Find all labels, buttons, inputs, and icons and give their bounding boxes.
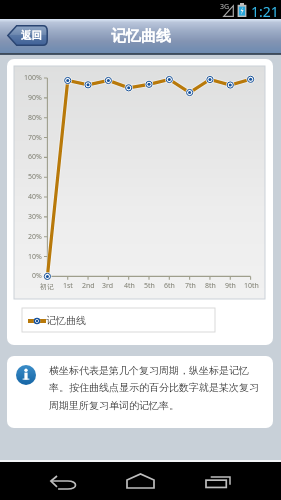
button[interactable]: Recent apps (191, 462, 245, 500)
staticText: 3rd (102, 281, 114, 291)
staticText: 60% (28, 152, 42, 162)
staticText: 2nd (82, 281, 95, 291)
staticText: 9th (225, 281, 236, 291)
staticText: 初记 (40, 282, 54, 291)
staticText: 7th (185, 281, 196, 291)
staticText: 4th (124, 281, 135, 291)
staticText: 1:21 (251, 2, 279, 21)
button[interactable]: Back (36, 462, 90, 500)
staticText: 6th (164, 281, 175, 291)
staticText: 记忆曲线 (46, 314, 86, 327)
staticText: 横坐标代表是第几个复习周期，纵坐标是记忆率。按住曲线点显示的百分比数字就是某次复… (49, 364, 263, 412)
staticText: 100% (24, 73, 42, 83)
staticText: 3G (220, 2, 230, 12)
staticText: 30% (28, 212, 42, 222)
staticText: 0% (32, 271, 42, 281)
button[interactable]: Home (113, 462, 167, 500)
staticText: 20% (28, 232, 42, 242)
staticText: 记忆曲线 (111, 27, 171, 46)
staticText: 8th (205, 281, 216, 291)
staticText: 5th (144, 281, 155, 291)
staticText: 80% (28, 113, 42, 123)
staticText: 70% (28, 133, 42, 143)
staticText: 1st (63, 281, 73, 291)
staticText: 40% (28, 192, 42, 202)
staticText: 90% (28, 93, 42, 103)
staticText: 10th (244, 281, 259, 291)
button[interactable]: 返回 (7, 25, 48, 46)
staticText: 50% (28, 172, 42, 182)
staticText: 返回 (21, 29, 42, 42)
button[interactable]: 记忆曲线 (22, 308, 215, 332)
staticText: 10% (28, 252, 42, 262)
